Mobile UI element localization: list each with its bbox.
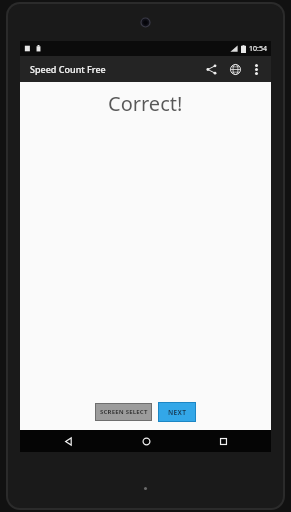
button[interactable]: NEXT (158, 402, 196, 422)
button[interactable]: More options (247, 60, 265, 78)
staticText: Correct! (108, 90, 183, 117)
button[interactable]: Recent apps (193, 430, 253, 452)
staticText: SCREEN SELECT (100, 408, 148, 416)
button[interactable]: Language (224, 58, 246, 80)
staticText: 10:54 (249, 44, 267, 54)
button[interactable]: Back (38, 430, 98, 452)
staticText: Speed Count Free (30, 63, 106, 75)
button[interactable]: Share (200, 58, 222, 80)
button[interactable]: Home (116, 430, 176, 452)
button[interactable]: SCREEN SELECT (95, 403, 152, 421)
staticText: NEXT (168, 408, 187, 417)
